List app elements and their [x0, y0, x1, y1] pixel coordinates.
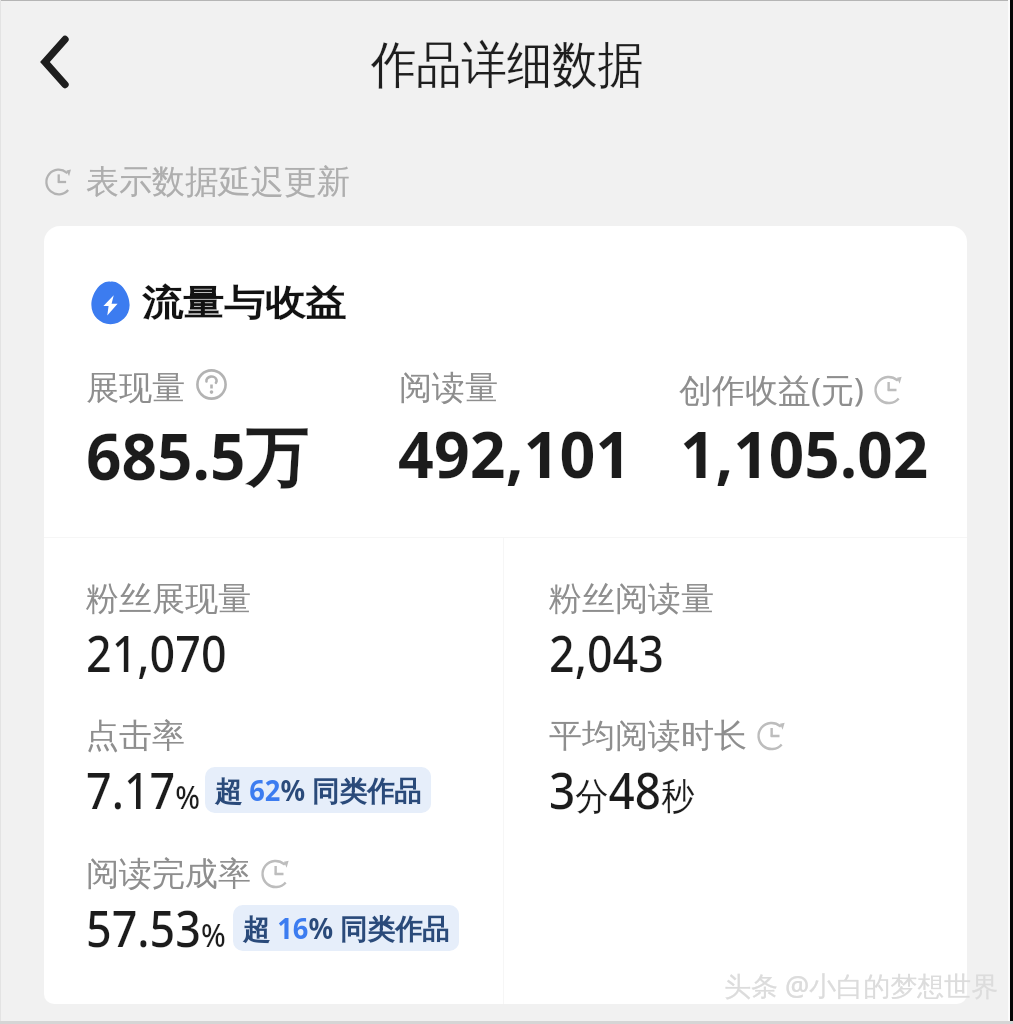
staticText: 粉丝阅读量	[549, 578, 714, 620]
staticText: 展现量	[86, 367, 185, 409]
staticText: 685.5万	[86, 411, 308, 500]
staticText: 21,070	[86, 617, 227, 686]
staticText: 点击率	[86, 715, 185, 757]
staticText: 超 16% 同类作品	[243, 909, 449, 947]
staticText: 流量与收益	[142, 282, 346, 326]
staticText: 粉丝展现量	[86, 578, 251, 620]
staticText: 阅读量	[399, 367, 498, 409]
staticText: 超 62% 同类作品	[215, 771, 421, 809]
staticText: 1,105.02	[680, 409, 928, 498]
staticText: 3分48秒	[549, 754, 695, 823]
staticText: 表示数据延迟更新	[86, 161, 350, 203]
staticText: 头条 @小白的梦想世界	[724, 967, 999, 1004]
staticText: 57.53%	[86, 892, 226, 961]
staticText: 平均阅读时长	[549, 715, 747, 757]
staticText: 作品详细数据	[371, 34, 643, 97]
staticText: 创作收益(元)	[679, 367, 864, 412]
staticText: 7.17%	[86, 754, 200, 823]
staticText: 2,043	[549, 617, 664, 686]
button[interactable]: Back	[20, 27, 90, 97]
staticText: 阅读完成率	[86, 853, 251, 895]
staticText: 492,101	[398, 409, 631, 498]
